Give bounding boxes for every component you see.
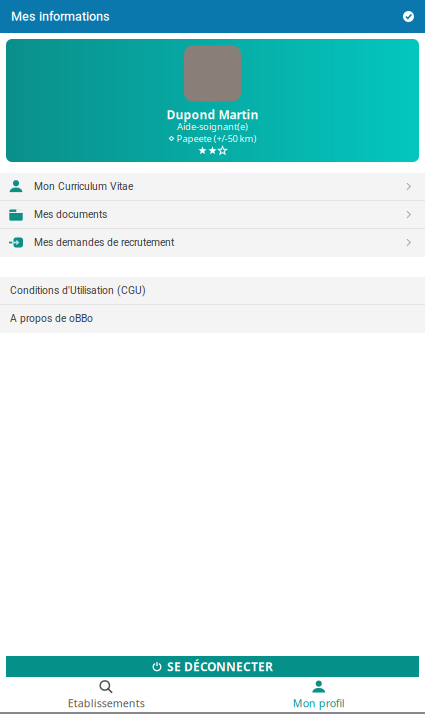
button[interactable]: Conditions d'Utilisation (CGU) [0, 277, 425, 304]
button[interactable]: Mes demandes de recrutement [0, 229, 425, 256]
staticText: SE DÉCONNECTER [167, 658, 273, 674]
staticText: Mon Curriculum Vitae [34, 180, 133, 192]
button[interactable]: Mon Curriculum Vitae [0, 173, 425, 200]
staticText: Etablissements [68, 696, 145, 710]
staticText: Conditions d'Utilisation (CGU) [10, 284, 146, 296]
staticText: Aide-soignant(e) [177, 120, 248, 133]
staticText: Mon profil [293, 696, 345, 710]
staticText: Mes informations [11, 9, 110, 24]
staticText: Dupond Martin [166, 106, 258, 122]
button[interactable]: A propos de oBBo [0, 305, 425, 332]
button[interactable]: Mes documents [0, 201, 425, 228]
staticText: Mes documents [34, 208, 107, 220]
staticText: A propos de oBBo [10, 312, 93, 324]
button[interactable]: Mon profil [212, 678, 425, 712]
staticText: Mes demandes de recrutement [34, 236, 174, 248]
button[interactable]: Etablissements [0, 678, 212, 712]
staticText: Papeete (+/-50 km) [176, 132, 256, 145]
button[interactable]: SE DÉCONNECTER [6, 656, 419, 677]
button[interactable]: Valider [403, 0, 425, 33]
